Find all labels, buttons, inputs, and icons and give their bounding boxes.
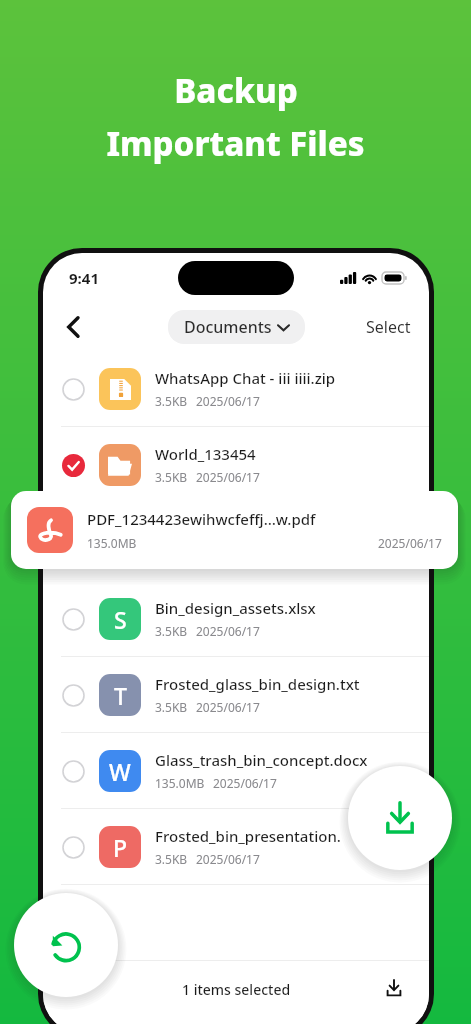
button[interactable]: P [43,809,429,884]
staticText: 3.5KB [155,623,188,639]
staticText: 2025/06/17 [196,393,260,409]
staticText: T [114,680,127,711]
staticText: Frosted_glass_bin_design.txt [155,674,360,694]
button[interactable]: W [43,733,429,808]
staticText: 1 items selected [182,980,291,999]
button[interactable]: Restore [14,893,118,997]
staticText: 9:41 [69,268,99,288]
staticText: 2025/06/17 [196,623,260,639]
staticText: Glass_trash_bin_concept.docx [155,750,368,770]
button[interactable]: WhatsApp Chat - iii iiii.zip [43,351,429,426]
button[interactable]: S [43,581,429,656]
button[interactable]: Documents [168,310,305,344]
staticText: S [114,604,127,635]
button[interactable]: Select [348,308,429,346]
staticText: W [109,756,131,787]
staticText: Bin_design_assets.xlsx [155,598,316,618]
staticText: 2025/06/17 [196,851,260,867]
staticText: 2025/06/17 [196,699,260,715]
staticText: 3.5KB [155,851,188,867]
button[interactable]: Download selected [377,971,411,1005]
staticText: 3.5KB [155,393,188,409]
staticText: Select [366,316,411,338]
button[interactable]: World_133454 [43,427,429,502]
staticText: 2025/06/17 [196,469,260,485]
staticText: Documents [184,316,272,338]
staticText: Important Files [106,121,365,166]
staticText: World_133454 [155,444,256,464]
button[interactable]: PDF_1234423ewihwcfeffj…w.pdf [11,491,458,569]
staticText: 135.0MB [155,775,205,791]
staticText: 3.5KB [155,469,188,485]
staticText: PDF_1234423ewihwcfeffj…w.pdf [87,509,316,529]
staticText: Backup [174,68,298,113]
staticText: 2025/06/17 [213,775,277,791]
staticText: Frosted_bin_presentation. [155,826,341,846]
staticText: WhatsApp Chat - iii iiii.zip [155,368,336,388]
staticText: P [113,832,128,863]
button[interactable]: Download [348,766,452,870]
staticText: 135.0MB [87,535,137,551]
staticText: 2025/06/17 [378,535,442,551]
staticText: 3.5KB [155,699,188,715]
button[interactable]: Back [51,305,95,349]
button[interactable]: T [43,657,429,732]
